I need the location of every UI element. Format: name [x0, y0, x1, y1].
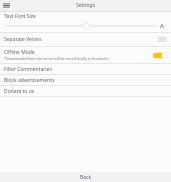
staticText: Settings	[76, 2, 96, 9]
button[interactable]: Filter Commentaries	[0, 64, 171, 74]
staticText: Block advertisements	[4, 77, 55, 84]
button[interactable]: Menu	[2, 1, 11, 10]
button[interactable]: Back	[0, 172, 171, 182]
staticText: Back	[80, 174, 92, 181]
button[interactable]: Block advertisements	[0, 75, 171, 85]
button[interactable]: Text Font Size	[0, 12, 171, 32]
staticText: Offline Mode	[4, 49, 35, 56]
staticText: Donate to us	[4, 88, 35, 95]
button[interactable]: Offline Mode	[0, 47, 171, 63]
staticText: Separate Verses	[4, 36, 42, 43]
button[interactable]: Donate to us	[0, 86, 171, 96]
staticText: A	[160, 22, 164, 30]
staticText: Filter Commentaries	[4, 66, 52, 73]
button[interactable]: Separate Verses	[0, 33, 171, 46]
staticText: Text Font Size	[4, 13, 36, 20]
staticText: *Downloaded from the server will be stor…	[4, 56, 109, 61]
